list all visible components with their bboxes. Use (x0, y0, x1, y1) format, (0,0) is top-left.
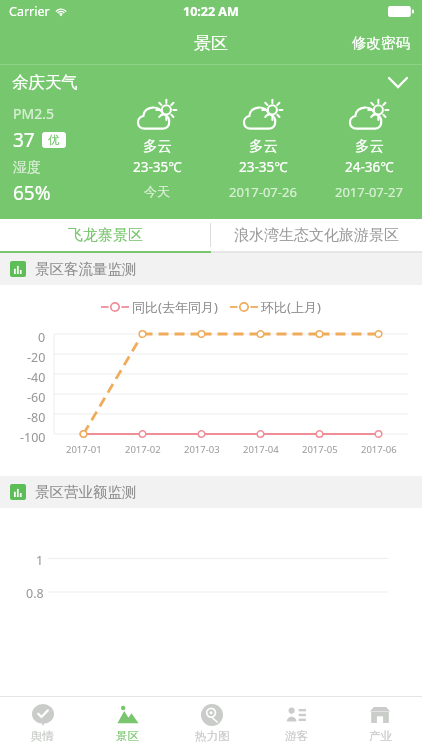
staticText: 景区 (194, 33, 228, 54)
staticText: 产业 (369, 729, 392, 743)
staticText: 24-36℃ (345, 158, 394, 176)
button[interactable]: 景区 (85, 697, 170, 750)
staticText: 游客 (285, 729, 308, 743)
staticText: 2017-07-26 (229, 183, 297, 201)
staticText: 65% (13, 180, 51, 206)
staticText: 景区 (116, 729, 139, 743)
staticText: 2017-07-27 (335, 183, 403, 201)
staticText: 37 (13, 127, 35, 153)
staticText: 0.8 (26, 585, 44, 602)
staticText: 1 (36, 552, 44, 569)
staticText: 景区营业额监测 (35, 483, 137, 501)
staticText: 10:22 AM (183, 3, 239, 20)
staticText: 优 (48, 133, 60, 147)
staticText: 23-35℃ (133, 158, 182, 176)
staticText: -100 (20, 429, 46, 446)
button[interactable]: 收起天气 (374, 69, 422, 96)
staticText: 2017-04 (243, 443, 279, 456)
staticText: 2017-01 (66, 443, 102, 456)
staticText: -80 (27, 409, 46, 426)
staticText: 2017-06 (361, 443, 397, 456)
staticText: 舆情 (31, 729, 54, 743)
staticText: 热力图 (195, 729, 230, 743)
button[interactable]: 游客 (254, 697, 338, 750)
staticText: 多云 (355, 137, 384, 155)
staticText: 2017-02 (125, 443, 161, 456)
staticText: PM2.5 (13, 104, 54, 123)
staticText: 2017-05 (302, 443, 338, 456)
button[interactable]: 浪水湾生态文化旅游景区 (211, 219, 422, 251)
staticText: 环比(上月) (261, 298, 321, 316)
button[interactable]: 舆情 (0, 697, 85, 750)
staticText: 23-35℃ (239, 158, 288, 176)
staticText: 修改密码 (352, 34, 410, 52)
staticText: 浪水湾生态文化旅游景区 (234, 226, 399, 245)
staticText: 2017-03 (184, 443, 220, 456)
staticText: 今天 (144, 183, 170, 199)
staticText: -20 (27, 349, 46, 366)
staticText: 余庆天气 (12, 72, 78, 93)
button[interactable]: 热力图 (170, 697, 254, 750)
staticText: 0 (38, 329, 46, 346)
button[interactable]: 飞龙寨景区 (0, 219, 210, 251)
staticText: 湿度 (13, 159, 41, 177)
staticText: -60 (27, 389, 46, 406)
button[interactable]: 修改密码 (340, 25, 422, 61)
staticText: 同比(去年同月) (132, 298, 218, 316)
staticText: Carrier (9, 3, 50, 20)
staticText: 景区客流量监测 (35, 260, 137, 278)
staticText: 多云 (249, 137, 278, 155)
button[interactable]: 产业 (338, 697, 422, 750)
staticText: 多云 (143, 137, 172, 155)
staticText: -40 (27, 369, 46, 386)
staticText: 飞龙寨景区 (68, 226, 143, 245)
